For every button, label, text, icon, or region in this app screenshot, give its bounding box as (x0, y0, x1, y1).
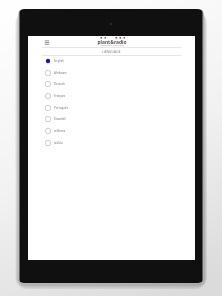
staticText: English (54, 59, 64, 63)
button[interactable]: Deutsch (28, 78, 195, 90)
staticText: Deutsch (54, 82, 66, 86)
button[interactable]: Kiswahili (28, 113, 195, 125)
staticText: isiZulu (54, 141, 63, 145)
button[interactable]: English (28, 55, 195, 67)
staticText: Kiswahili (54, 117, 66, 121)
staticText: Português (54, 106, 69, 110)
button[interactable]: Afrikaans (28, 67, 195, 79)
staticText: plant&radio (97, 39, 127, 46)
staticText: isiXhosa (54, 129, 66, 133)
button[interactable]: Português (28, 102, 195, 114)
staticText: Afrikaans (54, 71, 67, 75)
button[interactable]: isiZulu (28, 137, 195, 149)
button[interactable]: Français (28, 90, 195, 102)
staticText: your plants, your radio (100, 44, 124, 47)
staticText: LANGUAGE (102, 50, 121, 54)
button[interactable]: isiXhosa (28, 125, 195, 137)
staticText: Français (54, 94, 66, 98)
button[interactable]: Open navigation menu (40, 37, 51, 48)
